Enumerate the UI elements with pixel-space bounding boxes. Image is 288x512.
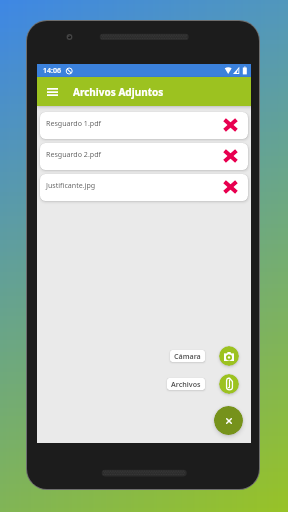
button[interactable]: Archivos bbox=[219, 374, 239, 394]
button[interactable]: Archivos bbox=[167, 378, 205, 390]
button[interactable]: Cámara bbox=[219, 346, 239, 366]
staticText: Resguardo 1.pdf bbox=[46, 118, 101, 128]
button[interactable]: Cerrar menú bbox=[214, 406, 243, 435]
staticText: Archivos Adjuntos bbox=[73, 85, 164, 99]
staticText: Archivos bbox=[171, 379, 201, 389]
button[interactable]: Eliminar archivo bbox=[222, 118, 238, 134]
staticText: Cámara bbox=[174, 351, 201, 361]
staticText: Justificante.jpg bbox=[46, 180, 96, 190]
button[interactable]: Justificante.jpg bbox=[40, 174, 248, 201]
button[interactable]: Resguardo 2.pdf bbox=[40, 143, 248, 170]
button[interactable]: Cámara bbox=[170, 350, 205, 362]
button[interactable]: Menú bbox=[42, 82, 62, 102]
staticText: 14:06 bbox=[43, 66, 61, 76]
button[interactable]: Eliminar archivo bbox=[222, 149, 238, 165]
staticText: Resguardo 2.pdf bbox=[46, 149, 101, 159]
button[interactable]: Resguardo 1.pdf bbox=[40, 112, 248, 139]
button[interactable]: Eliminar archivo bbox=[222, 180, 238, 196]
